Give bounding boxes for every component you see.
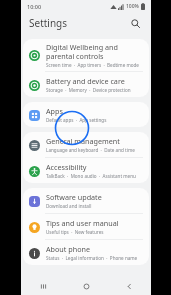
button[interactable]: Apps xyxy=(23,102,149,127)
staticText: Settings xyxy=(29,16,68,30)
staticText: Software update xyxy=(46,192,102,202)
button[interactable]: About phone xyxy=(23,240,149,265)
button[interactable]: Digital Wellbeing and parental controls xyxy=(23,39,149,71)
staticText: 100% xyxy=(126,3,139,10)
staticText: Default apps · App settings xyxy=(46,117,107,123)
staticText: TalkBack · Mono audio · Assistant menu xyxy=(46,173,136,179)
button[interactable]: Software update xyxy=(23,188,149,213)
staticText: Battery and device care xyxy=(46,76,125,86)
button[interactable]: Battery and device care xyxy=(23,72,149,97)
staticText: Screen time · App timers · Bedtime mode xyxy=(46,62,139,68)
staticText: Language and keyboard · Date and time xyxy=(46,147,135,153)
button[interactable]: Accessibility xyxy=(23,158,149,183)
staticText: Accessibility xyxy=(46,162,87,172)
staticText: 10:00 xyxy=(27,3,42,10)
button[interactable]: Recents xyxy=(21,277,65,295)
staticText: About phone xyxy=(46,244,90,254)
staticText: Download and install xyxy=(46,203,92,209)
button[interactable]: General management xyxy=(23,132,149,157)
button[interactable]: Back xyxy=(108,277,151,295)
button[interactable]: Search xyxy=(127,15,143,31)
staticText: Tips and user manual xyxy=(46,218,119,228)
staticText: Useful tips · New features xyxy=(46,229,104,235)
staticText: Apps xyxy=(46,106,63,116)
button[interactable]: Tips and user manual xyxy=(23,214,149,239)
staticText: General management xyxy=(46,136,120,146)
staticText: Storage · Memory · Device protection xyxy=(46,87,131,93)
button[interactable]: Home xyxy=(65,277,108,295)
staticText: Status · Legal information · Phone name xyxy=(46,255,138,261)
staticText: Digital Wellbeing and parental controls xyxy=(46,42,143,61)
